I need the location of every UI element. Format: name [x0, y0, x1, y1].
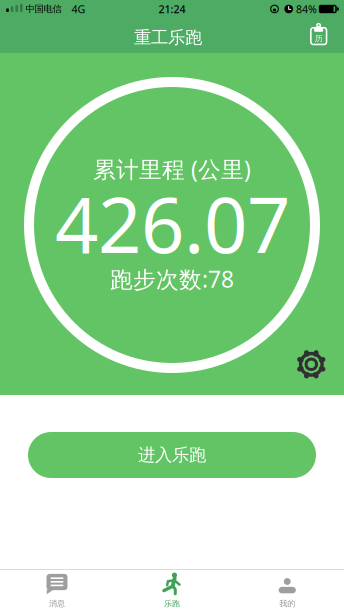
button[interactable]: 消息	[0, 570, 115, 611]
button[interactable]: 进入乐跑	[28, 432, 316, 478]
staticText: 我的	[279, 599, 295, 608]
staticText: 84%	[296, 2, 317, 16]
button[interactable]: 我的	[229, 570, 344, 611]
button[interactable]: 乐跑	[115, 570, 229, 611]
staticText: 消息	[49, 599, 65, 608]
staticText: 4G	[71, 2, 85, 16]
button[interactable]: 设置	[294, 347, 328, 381]
staticText: 累计里程 (公里)	[93, 154, 251, 184]
staticText: 426.07	[55, 173, 290, 274]
staticText: 跑步次数:78	[110, 264, 234, 294]
button[interactable]: 跑步日历	[306, 20, 332, 48]
staticText: 乐跑	[164, 599, 180, 608]
staticText: 重工乐跑	[134, 27, 202, 48]
staticText: 中国电信	[25, 3, 61, 15]
staticText: 进入乐跑	[138, 444, 206, 466]
staticText: 21:24	[158, 2, 185, 16]
staticText: 历	[315, 34, 323, 43]
